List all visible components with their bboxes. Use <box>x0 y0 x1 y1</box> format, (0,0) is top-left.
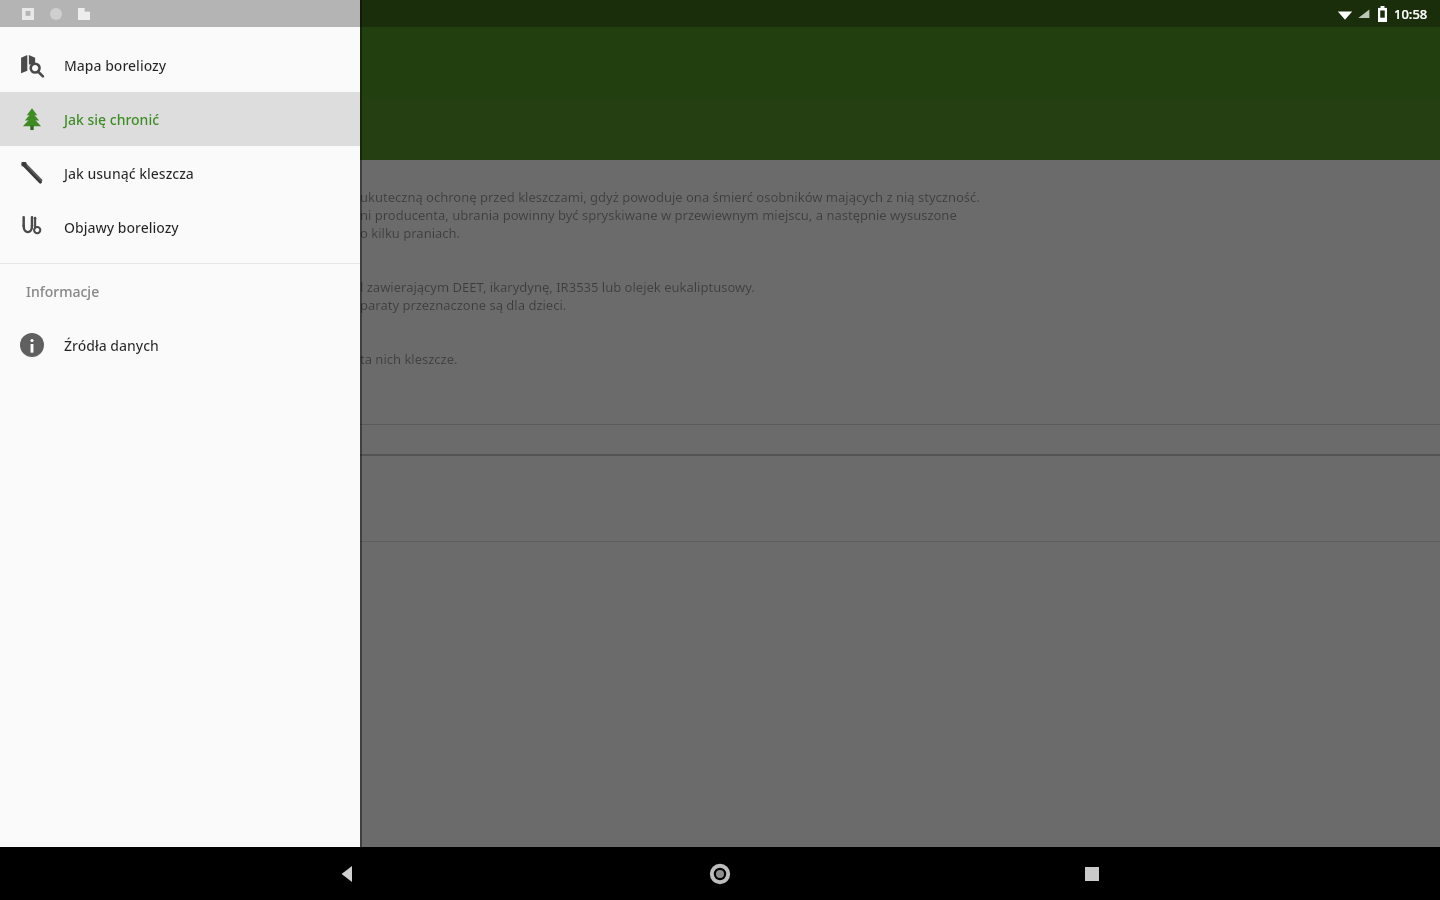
staticText: ukuteczną ochronę przed kleszczami, gdyż… <box>360 188 1416 206</box>
staticText: Mapa boreliozy <box>64 56 167 75</box>
staticText: Objawy boreliozy <box>64 218 179 237</box>
staticText: Jak się chronić <box>64 110 160 129</box>
staticText: paraty przeznaczone są dla dzieci. <box>360 296 1416 314</box>
button[interactable]: Źródła danych <box>0 318 360 372</box>
staticText: Informacje <box>26 282 100 301</box>
button[interactable]: Mapa boreliozy <box>0 38 360 92</box>
button[interactable]: Objawy boreliozy <box>0 200 360 254</box>
button[interactable]: Jak usunąć kleszcza <box>0 146 360 200</box>
staticText: l zawierającym DEET, ikarydynę, IR3535 l… <box>360 278 1416 296</box>
staticText: ta nich kleszcze. <box>360 350 1416 368</box>
staticText: Jak usunąć kleszcza <box>64 164 194 183</box>
staticText: o kilku praniach. <box>360 224 1416 242</box>
button[interactable]: Recent apps <box>1068 850 1116 898</box>
staticText: ni producenta, ubrania powinny być sprys… <box>360 206 1416 224</box>
staticText: Źródła danych <box>64 336 159 355</box>
button[interactable]: Home <box>696 850 744 898</box>
staticText: 10:58 <box>1394 5 1428 23</box>
button[interactable]: Back <box>324 850 372 898</box>
button[interactable]: Jak się chronić <box>0 92 360 146</box>
